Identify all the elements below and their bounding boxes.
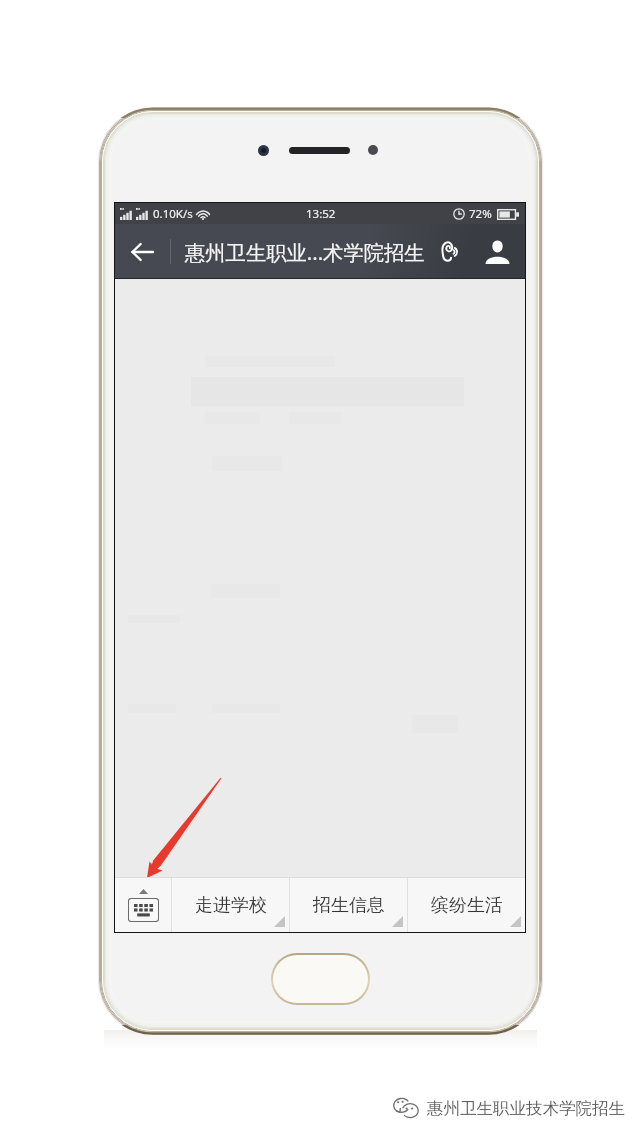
staticText: 缤纷生活 xyxy=(431,894,503,917)
button[interactable]: Back xyxy=(115,224,170,279)
button[interactable]: 招生信息 xyxy=(290,878,407,932)
staticText: 0.10K/s xyxy=(153,206,193,222)
staticText: 13:52 xyxy=(306,206,336,222)
staticText: 72% xyxy=(469,206,492,222)
staticText: 招生信息 xyxy=(313,894,385,917)
button[interactable]: Profile xyxy=(472,224,522,279)
button[interactable]: Keyboard xyxy=(115,878,171,932)
button[interactable]: Listen xyxy=(426,224,472,279)
staticText: 走进学校 xyxy=(195,894,267,917)
staticText: 惠州卫生职业技术学院招生 xyxy=(427,1098,625,1119)
staticText: 惠州卫生职业...术学院招生 xyxy=(185,238,425,266)
button[interactable]: 走进学校 xyxy=(172,878,289,932)
button[interactable]: Home xyxy=(273,955,368,1003)
button[interactable]: 缤纷生活 xyxy=(408,878,525,932)
